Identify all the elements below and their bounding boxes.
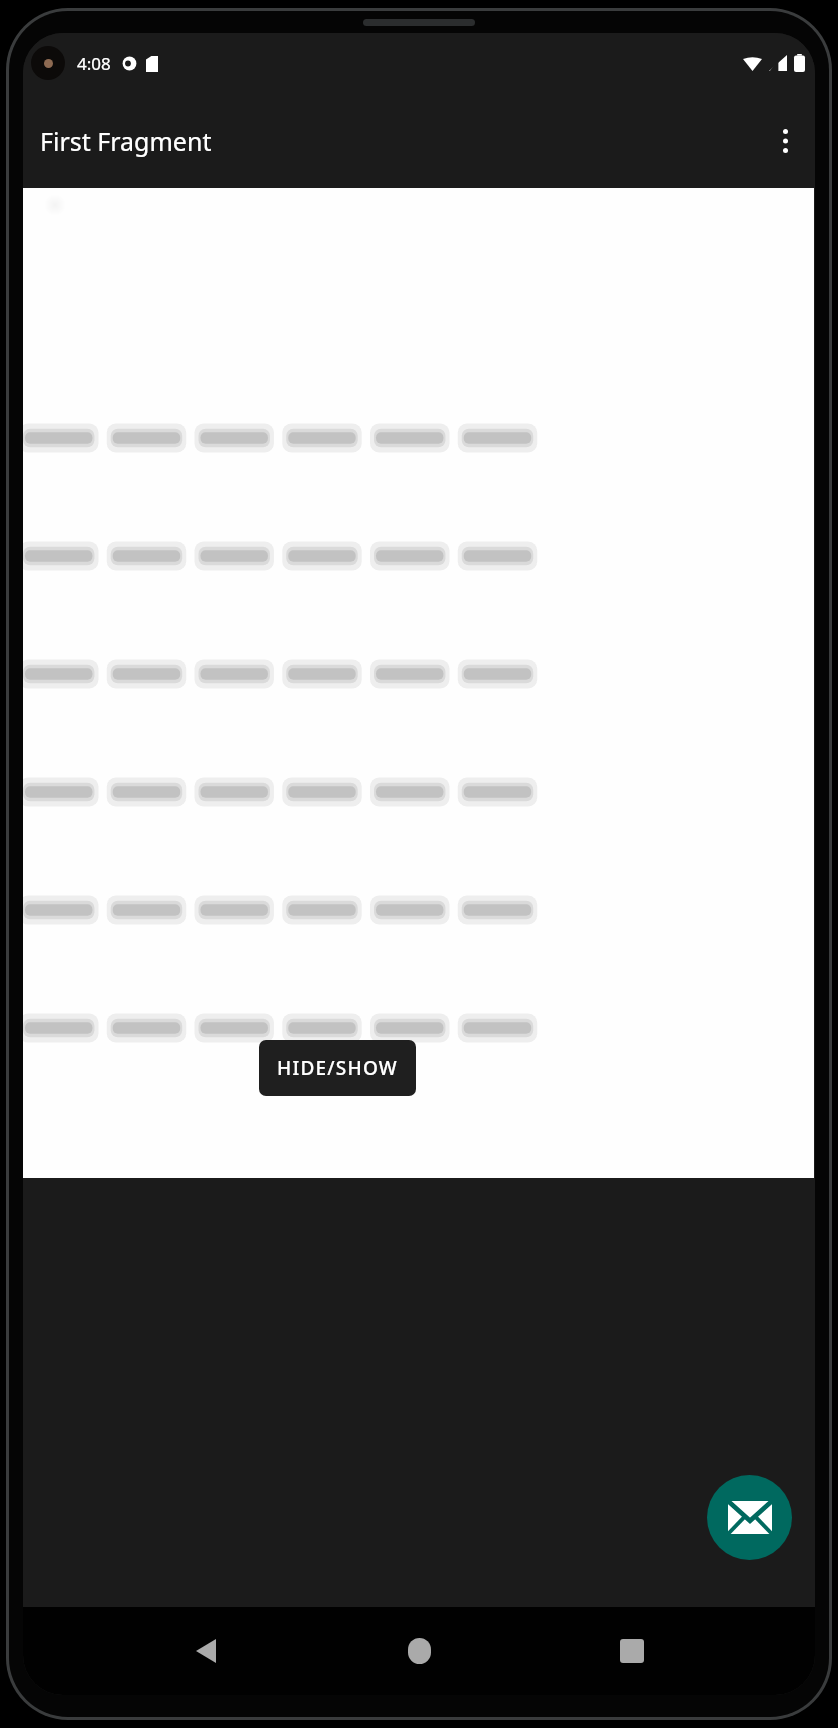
staticText: text test text text text text [24,641,338,676]
button[interactable]: text test text text text text [23,490,815,538]
staticText: text test text text text text [24,401,338,436]
staticText: HIDE/SHOW [277,1055,398,1081]
button[interactable]: text test text text text text [23,442,815,490]
button[interactable]: text test text text text text [23,346,815,394]
button[interactable]: HIDE/SHOW [259,1040,416,1096]
button[interactable]: text test text text text text [23,538,815,586]
button[interactable]: More options [761,117,809,165]
button[interactable]: text test text text text text [23,394,815,442]
button[interactable]: text test text text text text [23,634,815,682]
button[interactable]: text test text text text text [23,586,815,634]
button[interactable]: text test text text text text [23,298,815,346]
button[interactable]: text test text text text text [23,250,815,298]
staticText: 4:08 [77,52,111,75]
staticText: text test text text text text [24,545,338,580]
button[interactable]: Send email [707,1475,792,1560]
staticText: First Fragment [40,124,212,158]
button[interactable]: text test text text text text [23,682,815,730]
staticText: text test text text text text [24,449,338,484]
button[interactable]: text test text text text text [23,202,815,250]
button[interactable]: Back [176,1621,236,1681]
button[interactable]: Home [389,1621,449,1681]
button[interactable]: Recent apps [602,1621,662,1681]
